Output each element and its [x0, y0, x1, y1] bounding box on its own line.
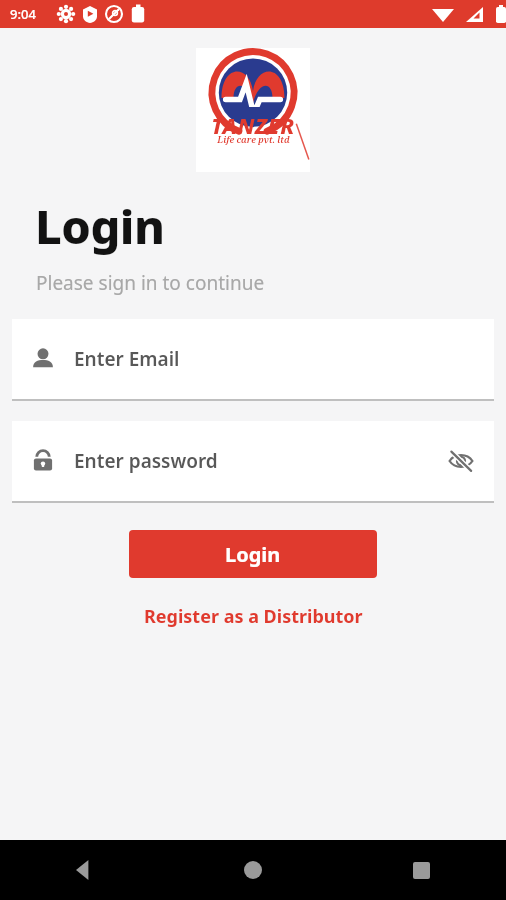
- staticText: Enter Email: [74, 346, 180, 372]
- staticText: Life care pvt. ltd: [217, 133, 290, 145]
- staticText: Please sign in to continue: [36, 270, 265, 296]
- button[interactable]: Home: [168, 840, 337, 900]
- staticText: 9:04: [10, 5, 36, 23]
- staticText: Enter password: [74, 448, 218, 474]
- staticText: Login: [225, 541, 281, 568]
- button[interactable]: Enter password: [12, 421, 494, 501]
- staticText: TANZER: [211, 110, 295, 140]
- button[interactable]: Recent apps: [337, 840, 506, 900]
- button[interactable]: Show password: [444, 444, 478, 478]
- button[interactable]: Back: [0, 840, 168, 900]
- staticText: Register as a Distributor: [144, 604, 363, 629]
- staticText: Login: [35, 194, 165, 258]
- button[interactable]: Login: [129, 530, 377, 578]
- button[interactable]: Enter Email: [12, 319, 494, 399]
- button[interactable]: Register as a Distributor: [130, 598, 377, 635]
